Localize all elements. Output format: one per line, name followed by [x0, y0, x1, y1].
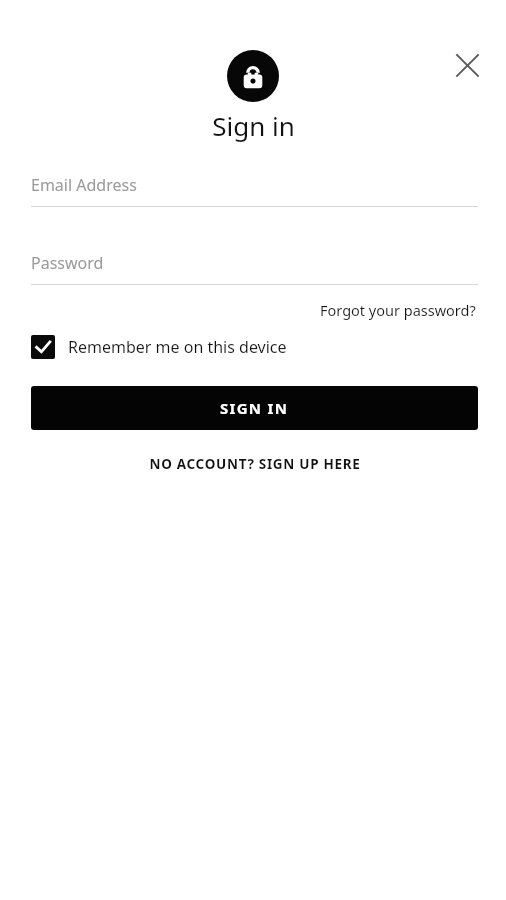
staticText: Sign in	[212, 108, 295, 143]
staticText: Password	[31, 252, 104, 274]
other: Remember me checkbox, checked	[31, 335, 55, 359]
button[interactable]: Password field	[31, 248, 478, 285]
staticText: SIGN IN	[220, 398, 289, 418]
staticText: NO ACCOUNT? SIGN UP HERE	[149, 455, 361, 473]
button[interactable]: NO ACCOUNT? SIGN UP HERE	[143, 451, 367, 477]
button[interactable]: SIGN IN	[31, 386, 478, 430]
staticText: Remember me on this device	[68, 336, 287, 358]
button[interactable]: Close	[443, 41, 491, 89]
button[interactable]: Email Address field	[31, 170, 478, 207]
button[interactable]: Remember me checkbox, checked	[31, 332, 287, 362]
staticText: Email Address	[31, 174, 137, 196]
staticText: Forgot your password?	[320, 300, 476, 320]
button[interactable]: Forgot your password?	[318, 297, 478, 323]
